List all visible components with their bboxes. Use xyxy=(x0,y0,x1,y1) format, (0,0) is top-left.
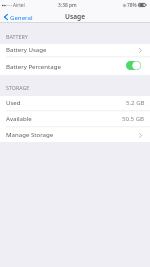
button[interactable]: General xyxy=(0,13,45,21)
staticText: 3:38 pm xyxy=(58,2,77,9)
staticText: Airtel xyxy=(13,2,25,8)
staticText: Usage xyxy=(65,12,86,21)
staticText: General xyxy=(10,13,33,21)
staticText: Available xyxy=(6,114,32,122)
staticText: 50.5 GB xyxy=(122,114,145,122)
staticText: Used xyxy=(6,98,21,106)
staticText: 78% xyxy=(127,2,137,9)
staticText: Manage Storage xyxy=(6,130,54,138)
staticText: 5.2 GB xyxy=(126,98,145,106)
button[interactable]: Battery Percentage xyxy=(0,58,150,75)
staticText: Battery Percentage xyxy=(6,62,61,70)
staticText: STORAGE xyxy=(6,84,30,91)
button[interactable]: Battery Percentage toggle xyxy=(126,61,141,70)
button[interactable]: Manage Storage xyxy=(0,128,150,142)
staticText: Battery Usage xyxy=(6,45,47,53)
button[interactable]: Battery Usage xyxy=(0,44,150,56)
staticText: BATTERY xyxy=(6,33,28,40)
